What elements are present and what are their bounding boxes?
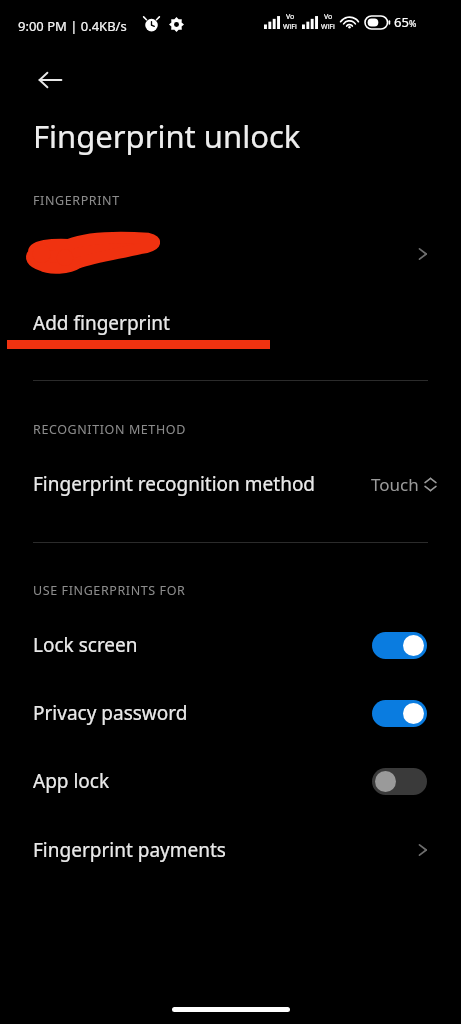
button[interactable] — [0, 222, 461, 286]
staticText: Vo — [286, 12, 295, 22]
staticText: Fingerprint unlock — [33, 115, 301, 157]
staticText: WiFi — [321, 22, 335, 32]
staticText: WiFi — [283, 22, 297, 32]
button[interactable]: Lock screen — [0, 615, 461, 675]
button[interactable]: Fingerprint recognition method — [0, 458, 461, 510]
staticText: FINGERPRINT — [33, 192, 120, 209]
staticText: Lock screen — [33, 632, 138, 658]
staticText: Add fingerprint — [33, 310, 170, 336]
staticText: Fingerprint recognition method — [33, 471, 316, 497]
button[interactable]: Add fingerprint — [0, 300, 461, 346]
staticText: RECOGNITION METHOD — [33, 421, 186, 438]
staticText: App lock — [33, 768, 110, 794]
button[interactable]: App lock — [0, 751, 461, 811]
button[interactable]: Back — [24, 54, 76, 106]
staticText: Vo — [324, 12, 333, 22]
staticText: 9:00 PM | 0.4KB/s — [18, 17, 127, 35]
staticText: Fingerprint payments — [33, 837, 226, 863]
staticText: Privacy password — [33, 700, 188, 726]
button[interactable]: Privacy password — [0, 683, 461, 743]
staticText: 65 — [394, 13, 409, 31]
staticText: % — [409, 17, 417, 29]
staticText: Touch — [371, 473, 419, 496]
button[interactable]: Fingerprint payments — [0, 820, 461, 880]
staticText: USE FINGERPRINTS FOR — [33, 582, 186, 599]
